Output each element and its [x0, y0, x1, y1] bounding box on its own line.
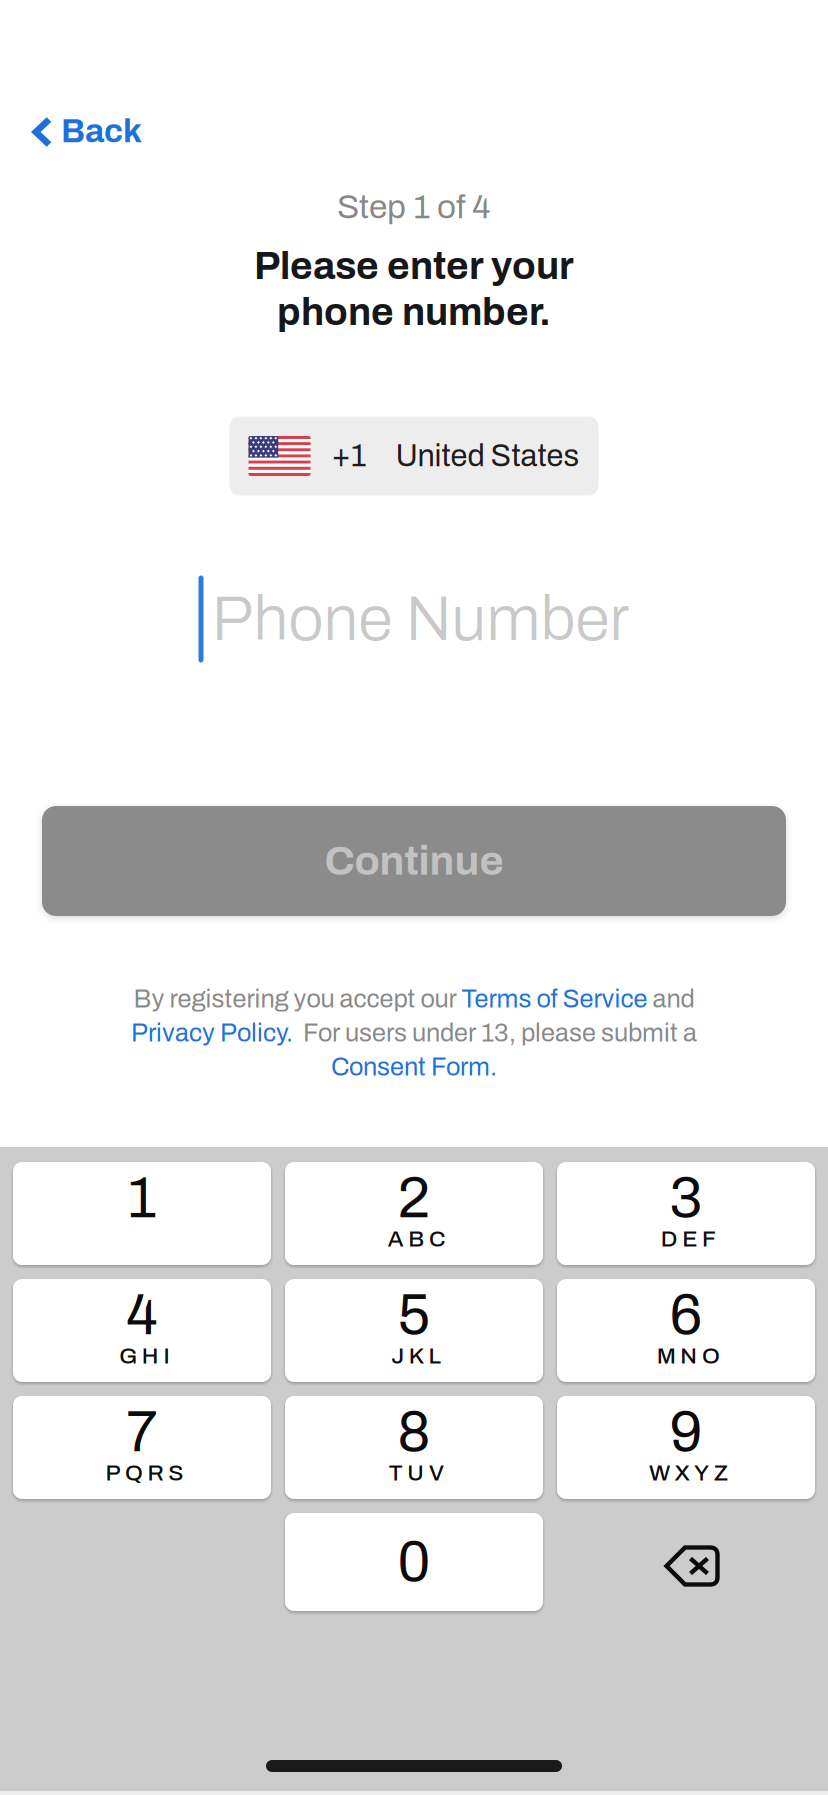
button[interactable]: Continue	[42, 806, 786, 916]
staticText: By registering you accept our	[133, 985, 461, 1013]
staticText: 5	[397, 1284, 430, 1346]
staticText: GHI	[119, 1344, 169, 1368]
button[interactable]: Consent Form.	[331, 1053, 497, 1081]
staticText: 3	[669, 1167, 702, 1229]
button[interactable]: 1	[13, 1162, 271, 1265]
staticText: phone number.	[277, 291, 551, 333]
staticText: 8	[397, 1401, 430, 1463]
button[interactable]: 6	[557, 1279, 815, 1382]
staticText: DEF	[661, 1227, 716, 1251]
staticText: 2	[397, 1167, 430, 1229]
staticText: For users under 13, please submit a	[293, 1019, 697, 1047]
button[interactable]: 3	[557, 1162, 815, 1265]
button[interactable]: Terms of Service	[461, 985, 647, 1013]
button[interactable]: 9	[557, 1396, 815, 1499]
staticText: ABC	[388, 1227, 445, 1251]
staticText: TUV	[389, 1461, 444, 1485]
staticText: WXYZ	[649, 1461, 728, 1485]
button[interactable]: 4	[13, 1279, 271, 1382]
button[interactable]: 8	[285, 1396, 543, 1499]
button[interactable]: 2	[285, 1162, 543, 1265]
staticText: Please enter your	[254, 245, 574, 287]
staticText: 4	[126, 1284, 158, 1346]
staticText: 9	[669, 1401, 702, 1463]
staticText: 0	[397, 1531, 430, 1593]
staticText: Continue	[324, 838, 503, 883]
staticText: Phone Number	[211, 585, 629, 653]
staticText: Step 1 of 4	[337, 189, 491, 225]
staticText: Privacy Policy.	[131, 1019, 293, 1047]
staticText: +1	[331, 439, 366, 473]
staticText: 6	[669, 1284, 702, 1346]
staticText: United States	[395, 439, 579, 473]
staticText: Terms of Service	[461, 985, 647, 1013]
staticText: JKL	[391, 1344, 441, 1368]
staticText: Back	[61, 113, 142, 149]
button[interactable]: +1	[229, 416, 598, 495]
staticText: PQRS	[105, 1461, 183, 1485]
button[interactable]: 5	[285, 1279, 543, 1382]
staticText: Consent Form.	[331, 1053, 497, 1081]
button[interactable]: Back	[0, 97, 164, 165]
button[interactable]: Privacy Policy.	[131, 1019, 293, 1047]
staticText: MNO	[657, 1344, 720, 1368]
button[interactable]: 7	[13, 1396, 271, 1499]
staticText: and	[647, 985, 694, 1013]
staticText: 7	[126, 1401, 158, 1463]
button[interactable]: Delete	[557, 1513, 815, 1611]
button[interactable]: 0	[285, 1513, 543, 1611]
staticText: 1	[127, 1167, 157, 1229]
